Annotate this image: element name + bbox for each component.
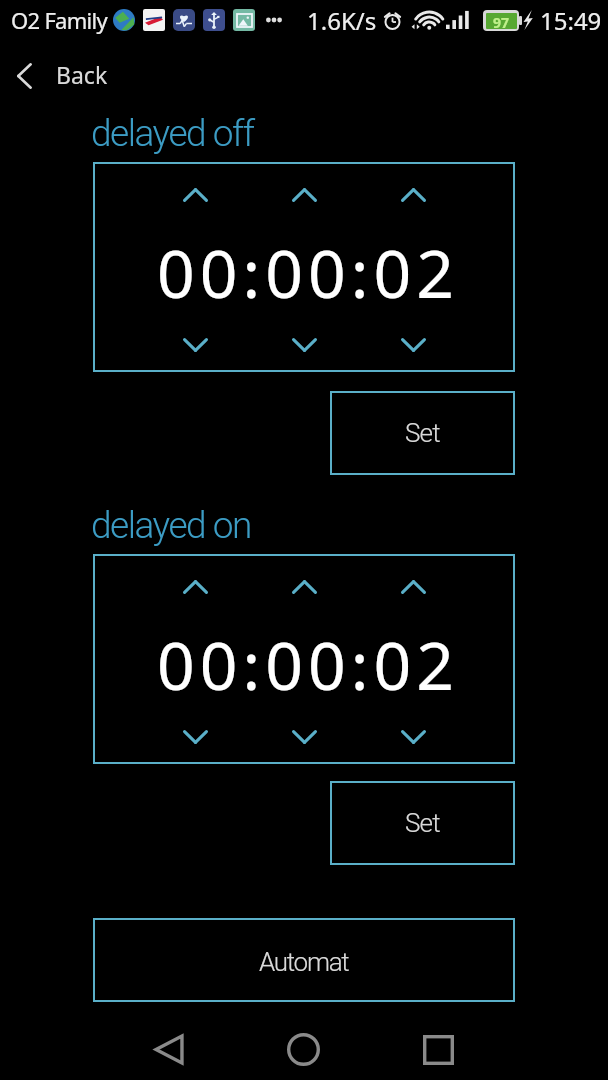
button[interactable]: Increase: [284, 577, 324, 597]
button[interactable]: Decrease: [284, 727, 324, 747]
staticText: 1.6K/s: [307, 4, 377, 37]
staticText: 97: [493, 13, 510, 29]
button[interactable]: Increase: [175, 577, 215, 597]
button[interactable]: Set: [330, 781, 515, 865]
button[interactable]: Increase: [284, 185, 324, 205]
button[interactable]: Recents: [402, 1013, 475, 1080]
button[interactable]: Decrease: [175, 335, 215, 355]
button[interactable]: Increase: [393, 185, 433, 205]
staticText: O2 Family: [11, 5, 108, 35]
button[interactable]: Automat: [93, 918, 515, 1002]
staticText: 00:00:02: [97, 227, 519, 317]
button[interactable]: Home: [267, 1013, 340, 1080]
button[interactable]: Back: [132, 1013, 205, 1080]
button[interactable]: Decrease: [393, 335, 433, 355]
staticText: Automat: [259, 947, 349, 977]
staticText: 00:00:02: [97, 619, 519, 709]
staticText: Set: [405, 808, 440, 838]
staticText: Back: [56, 59, 108, 90]
staticText: delayed off: [91, 112, 254, 155]
button[interactable]: Navigate up, Back: [0, 47, 160, 105]
button[interactable]: Decrease: [175, 727, 215, 747]
button[interactable]: Decrease: [284, 335, 324, 355]
button[interactable]: Increase: [175, 185, 215, 205]
button[interactable]: Set: [330, 391, 515, 475]
button[interactable]: Decrease: [393, 727, 433, 747]
button[interactable]: Increase: [393, 577, 433, 597]
staticText: Set: [405, 418, 440, 448]
staticText: delayed on: [91, 504, 251, 547]
staticText: 15:49: [540, 4, 602, 37]
